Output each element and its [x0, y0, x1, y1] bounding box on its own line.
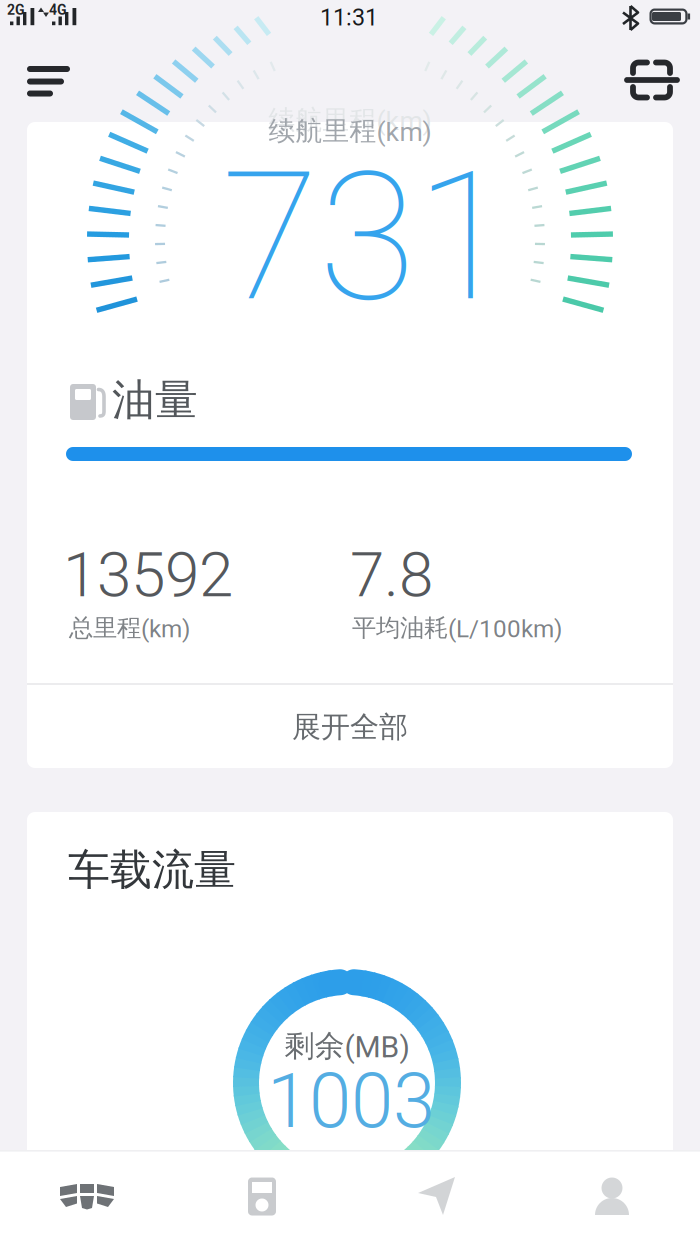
staticText: 731: [221, 133, 512, 342]
staticText: 4G: [49, 2, 67, 18]
button[interactable]: Menu: [0, 0, 62, 52]
staticText: 13592: [63, 539, 233, 611]
staticText: 车载流量: [68, 843, 236, 896]
staticText: 2G: [7, 2, 25, 18]
button[interactable]: Vehicle: [0, 0, 175, 94]
button[interactable]: Navigation: [0, 0, 175, 94]
staticText: 续航里程(km): [268, 103, 431, 137]
staticText: 7.8: [350, 539, 433, 611]
staticText: 平均油耗(L/100km): [352, 613, 562, 643]
staticText: 展开全部: [292, 709, 408, 745]
staticText: 续航里程(km): [268, 114, 431, 148]
button[interactable]: Scan: [0, 0, 66, 52]
staticText: 剩余(MB): [284, 1027, 409, 1065]
staticText: 油量: [112, 373, 198, 427]
button[interactable]: 展开全部: [0, 0, 646, 82]
staticText: 11:31: [320, 4, 378, 31]
button[interactable]: Profile: [0, 0, 175, 94]
staticText: 总里程(km): [69, 613, 190, 643]
staticText: 1003: [267, 1056, 435, 1146]
button[interactable]: Remote control: [0, 0, 175, 94]
